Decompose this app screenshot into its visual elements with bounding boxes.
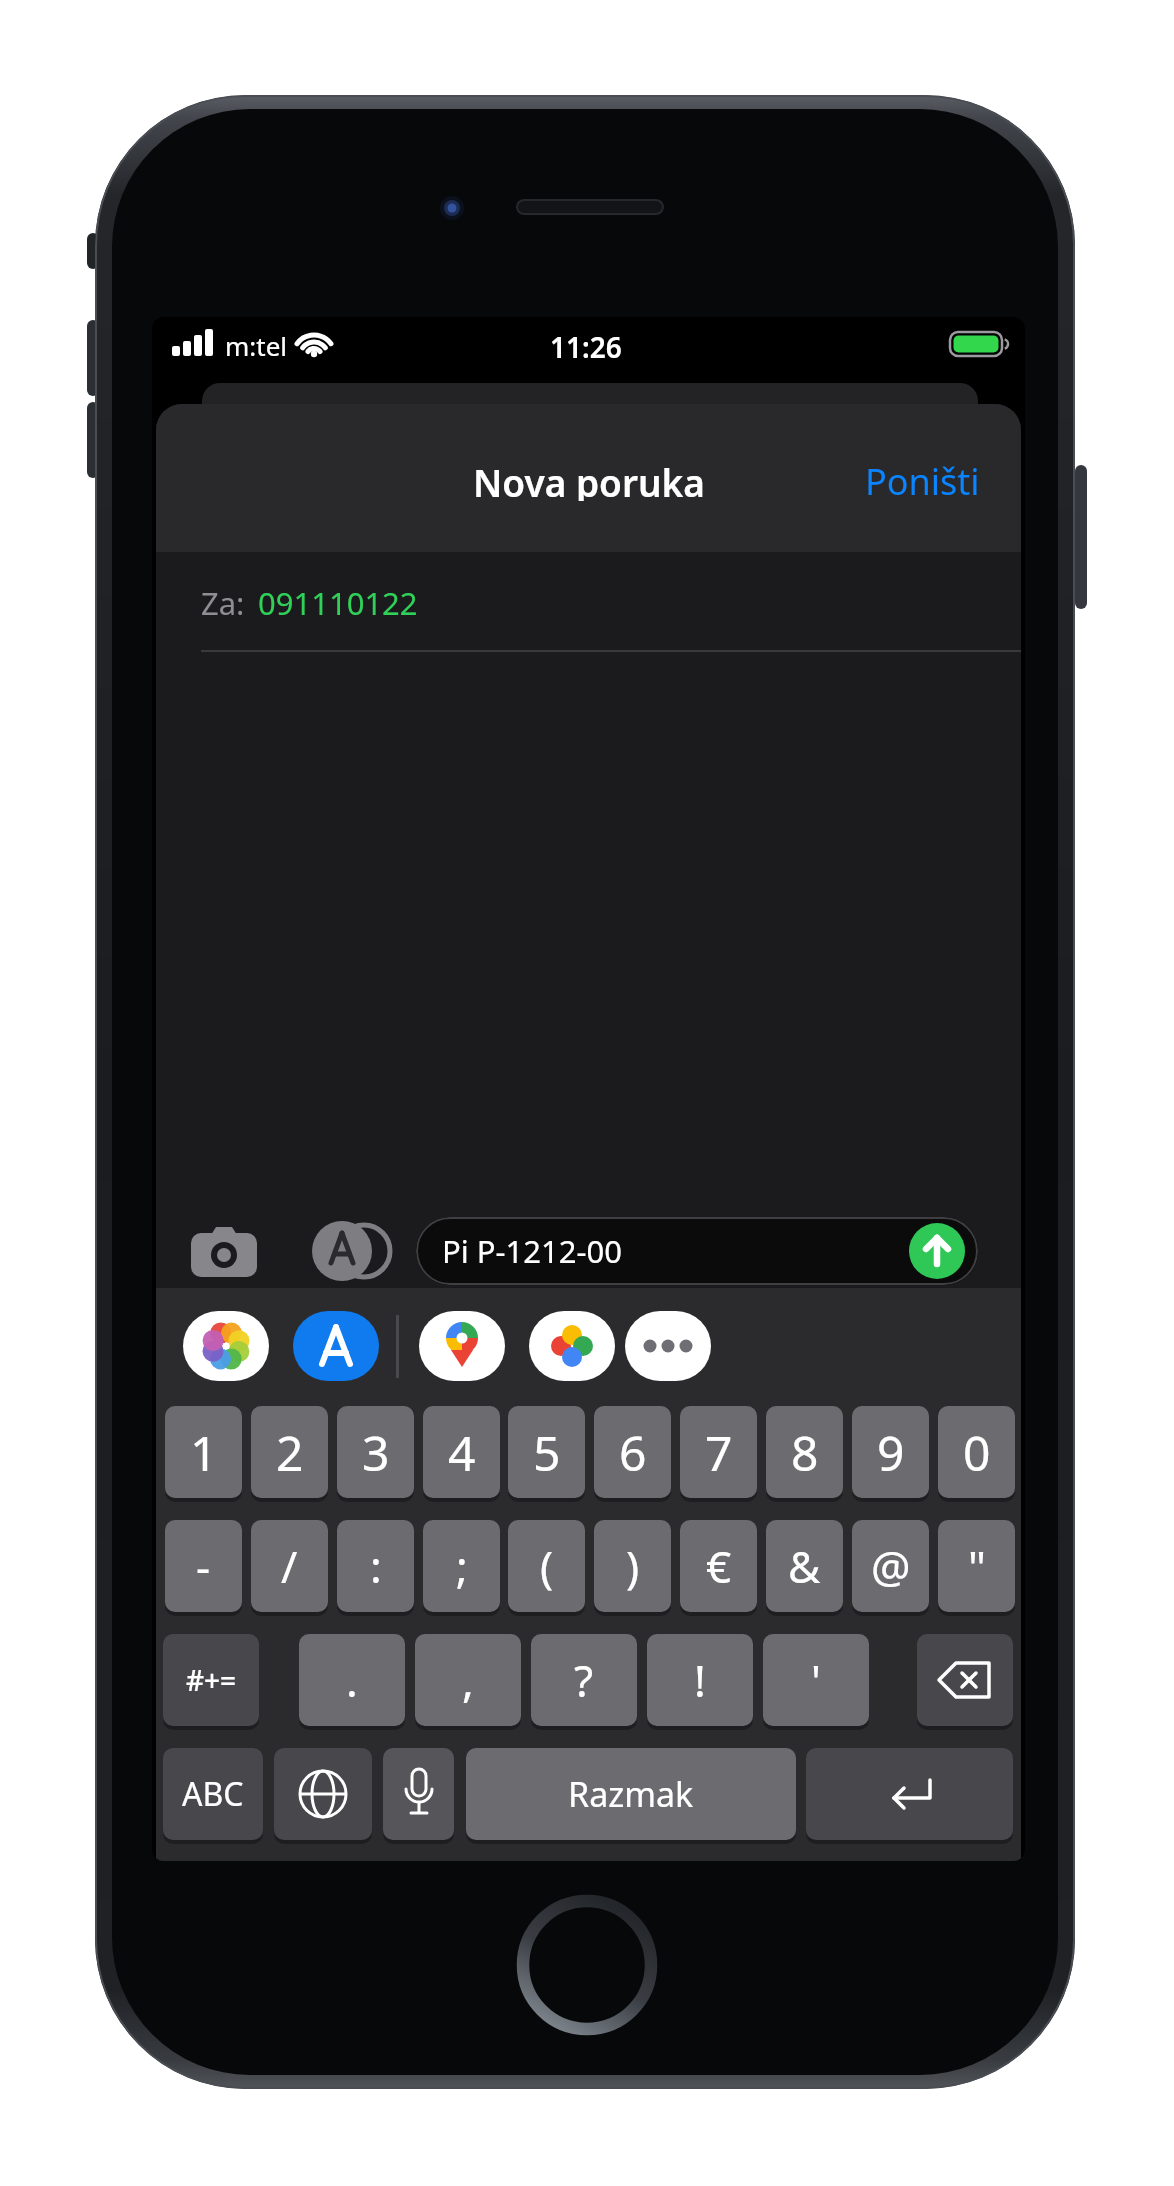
button[interactable]: / bbox=[251, 1520, 328, 1612]
button[interactable] bbox=[189, 1224, 259, 1278]
staticText: 3 bbox=[362, 1420, 390, 1485]
button[interactable]: ) bbox=[594, 1520, 671, 1612]
staticText: € bbox=[706, 1536, 732, 1596]
button[interactable]: 2 bbox=[251, 1406, 328, 1498]
button[interactable] bbox=[293, 1311, 379, 1381]
button[interactable]: 6 bbox=[594, 1406, 671, 1498]
button[interactable]: , bbox=[415, 1634, 521, 1726]
button[interactable]: € bbox=[680, 1520, 757, 1612]
button[interactable] bbox=[383, 1748, 454, 1840]
button[interactable] bbox=[529, 1311, 615, 1381]
button[interactable]: ; bbox=[423, 1520, 500, 1612]
button[interactable] bbox=[917, 1634, 1013, 1726]
staticText: Pi P-1212-00 bbox=[442, 1230, 622, 1272]
staticText: 11:26 bbox=[550, 328, 622, 360]
staticText: ) bbox=[626, 1536, 640, 1596]
staticText: ( bbox=[540, 1536, 554, 1596]
button[interactable]: @ bbox=[852, 1520, 929, 1612]
staticText: : bbox=[370, 1536, 382, 1596]
staticText: 8 bbox=[791, 1420, 819, 1485]
button[interactable]: 5 bbox=[508, 1406, 585, 1498]
staticText: / bbox=[281, 1536, 298, 1596]
staticText: ' bbox=[811, 1650, 821, 1710]
staticText: 091110122 bbox=[258, 582, 418, 622]
staticText: 5 bbox=[533, 1420, 561, 1485]
button[interactable]: ! bbox=[647, 1634, 753, 1726]
button[interactable]: ? bbox=[531, 1634, 637, 1726]
button[interactable]: ( bbox=[508, 1520, 585, 1612]
button[interactable]: & bbox=[766, 1520, 843, 1612]
staticText: ABC bbox=[182, 1772, 244, 1816]
button[interactable]: 7 bbox=[680, 1406, 757, 1498]
staticText: Poništi bbox=[865, 457, 980, 501]
staticText: . bbox=[346, 1650, 358, 1710]
button[interactable]: Razmak bbox=[466, 1748, 796, 1840]
button[interactable]: 0 bbox=[938, 1406, 1015, 1498]
staticText: Nova poruka bbox=[473, 457, 705, 501]
button[interactable]: ' bbox=[763, 1634, 869, 1726]
button[interactable] bbox=[183, 1311, 269, 1381]
button[interactable]: - bbox=[165, 1520, 242, 1612]
button[interactable]: Pi P-1212-00 bbox=[416, 1217, 978, 1285]
button[interactable] bbox=[307, 1216, 393, 1286]
button[interactable] bbox=[274, 1748, 372, 1840]
staticText: 4 bbox=[448, 1420, 476, 1485]
button[interactable]: 9 bbox=[852, 1406, 929, 1498]
staticText: Razmak bbox=[568, 1771, 694, 1817]
staticText: ; bbox=[456, 1536, 468, 1596]
staticText: ? bbox=[574, 1650, 594, 1710]
button[interactable]: #+= bbox=[163, 1634, 259, 1726]
staticText: " bbox=[968, 1536, 986, 1596]
button[interactable]: Poništi bbox=[752, 457, 980, 501]
button[interactable] bbox=[419, 1311, 505, 1381]
staticText: & bbox=[788, 1536, 821, 1596]
staticText: , bbox=[462, 1650, 474, 1710]
staticText: 7 bbox=[705, 1420, 733, 1485]
button[interactable]: . bbox=[299, 1634, 405, 1726]
staticText: 2 bbox=[276, 1420, 304, 1485]
button[interactable] bbox=[909, 1223, 965, 1279]
staticText: - bbox=[196, 1536, 211, 1596]
staticText: m:tel bbox=[225, 328, 288, 360]
button[interactable]: ABC bbox=[163, 1748, 263, 1840]
staticText: #+= bbox=[186, 1661, 237, 1699]
staticText: ! bbox=[694, 1650, 706, 1710]
button[interactable] bbox=[806, 1748, 1013, 1840]
button[interactable]: 8 bbox=[766, 1406, 843, 1498]
staticText: 9 bbox=[877, 1420, 905, 1485]
button[interactable]: " bbox=[938, 1520, 1015, 1612]
staticText: 1 bbox=[190, 1420, 218, 1485]
staticText: @ bbox=[871, 1536, 911, 1596]
staticText: Za: bbox=[201, 582, 245, 622]
button[interactable]: : bbox=[337, 1520, 414, 1612]
button[interactable]: 3 bbox=[337, 1406, 414, 1498]
button[interactable] bbox=[625, 1311, 711, 1381]
button[interactable]: 1 bbox=[165, 1406, 242, 1498]
staticText: 0 bbox=[963, 1420, 991, 1485]
staticText: 6 bbox=[619, 1420, 647, 1485]
button[interactable]: 4 bbox=[423, 1406, 500, 1498]
